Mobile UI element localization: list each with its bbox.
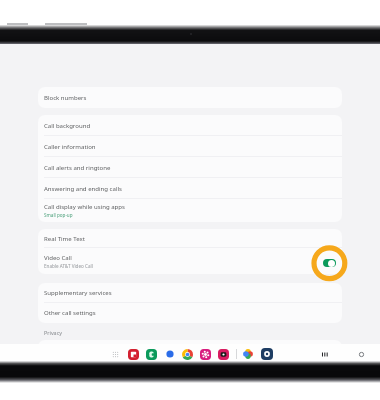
button[interactable]: Settings <box>261 348 273 360</box>
button[interactable]: Call alerts and ringtone <box>38 157 342 178</box>
button[interactable]: Camera <box>218 349 229 360</box>
staticText: Call alerts and ringtone <box>44 164 111 172</box>
button[interactable]: Phone <box>146 349 157 360</box>
button[interactable]: Call background <box>38 115 342 136</box>
staticText: Call background <box>44 122 91 130</box>
button[interactable]: Call display while using apps <box>38 199 342 222</box>
staticText: Other call settings <box>44 309 96 317</box>
button[interactable]: Video Call <box>38 248 342 274</box>
button[interactable]: Photos <box>243 349 253 359</box>
button[interactable]: Caller information <box>38 136 342 157</box>
button[interactable]: Block numbers <box>38 87 342 108</box>
button[interactable]: Answering and ending calls <box>38 178 342 199</box>
staticText: Call display while using apps <box>44 203 125 211</box>
button[interactable]: Supplementary services <box>38 283 342 303</box>
button[interactable]: Recents <box>320 350 329 359</box>
button[interactable]: Files <box>128 349 139 360</box>
staticText: Enable AT&T Video Call <box>44 263 93 269</box>
staticText: Privacy <box>44 329 62 336</box>
staticText: Video Call <box>44 254 72 262</box>
staticText: Supplementary services <box>44 289 112 297</box>
staticText: Caller information <box>44 143 96 151</box>
button[interactable]: Home <box>357 350 366 359</box>
button[interactable]: Real Time Text <box>38 229 342 248</box>
button[interactable]: All apps <box>111 350 120 359</box>
button[interactable]: Video Call toggle <box>323 259 336 267</box>
staticText: Answering and ending calls <box>44 185 122 193</box>
button[interactable]: Messenger <box>166 350 174 358</box>
button[interactable]: Fitness <box>200 349 211 360</box>
staticText: Small pop-up <box>44 212 73 218</box>
staticText: Real Time Text <box>44 235 85 243</box>
button[interactable]: Chrome <box>182 349 193 360</box>
staticText: Block numbers <box>44 94 87 102</box>
button[interactable]: Other call settings <box>38 303 342 323</box>
